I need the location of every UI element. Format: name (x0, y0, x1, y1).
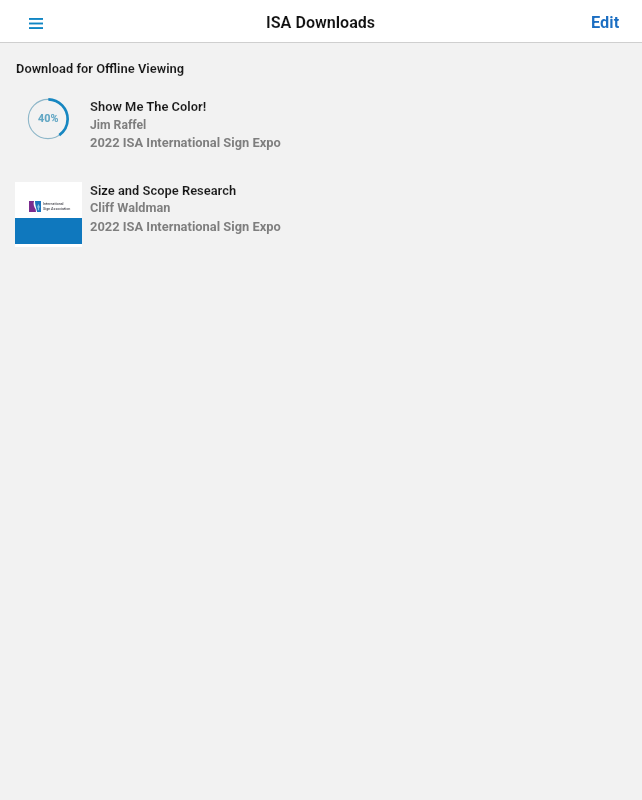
staticText: Size and Scope Research (90, 183, 237, 198)
staticText: 2022 ISA International Sign Expo (90, 135, 281, 150)
staticText: Jim Raffel (90, 118, 147, 132)
staticText: 40% (38, 112, 59, 125)
staticText: ISA Downloads (266, 13, 376, 32)
staticText: Edit (591, 13, 620, 32)
button[interactable]: International (0, 175, 642, 251)
staticText: International (43, 202, 64, 206)
staticText: Show Me The Color! (90, 99, 207, 114)
staticText: Cliff Waldman (90, 200, 171, 215)
button[interactable]: 40% (0, 90, 642, 162)
staticText: Sign Association (43, 207, 71, 211)
staticText: 2022 ISA International Sign Expo (90, 219, 281, 234)
button[interactable]: Menu (16, 4, 56, 43)
button[interactable]: Edit (591, 13, 620, 32)
staticText: Download for Offline Viewing (16, 61, 185, 76)
